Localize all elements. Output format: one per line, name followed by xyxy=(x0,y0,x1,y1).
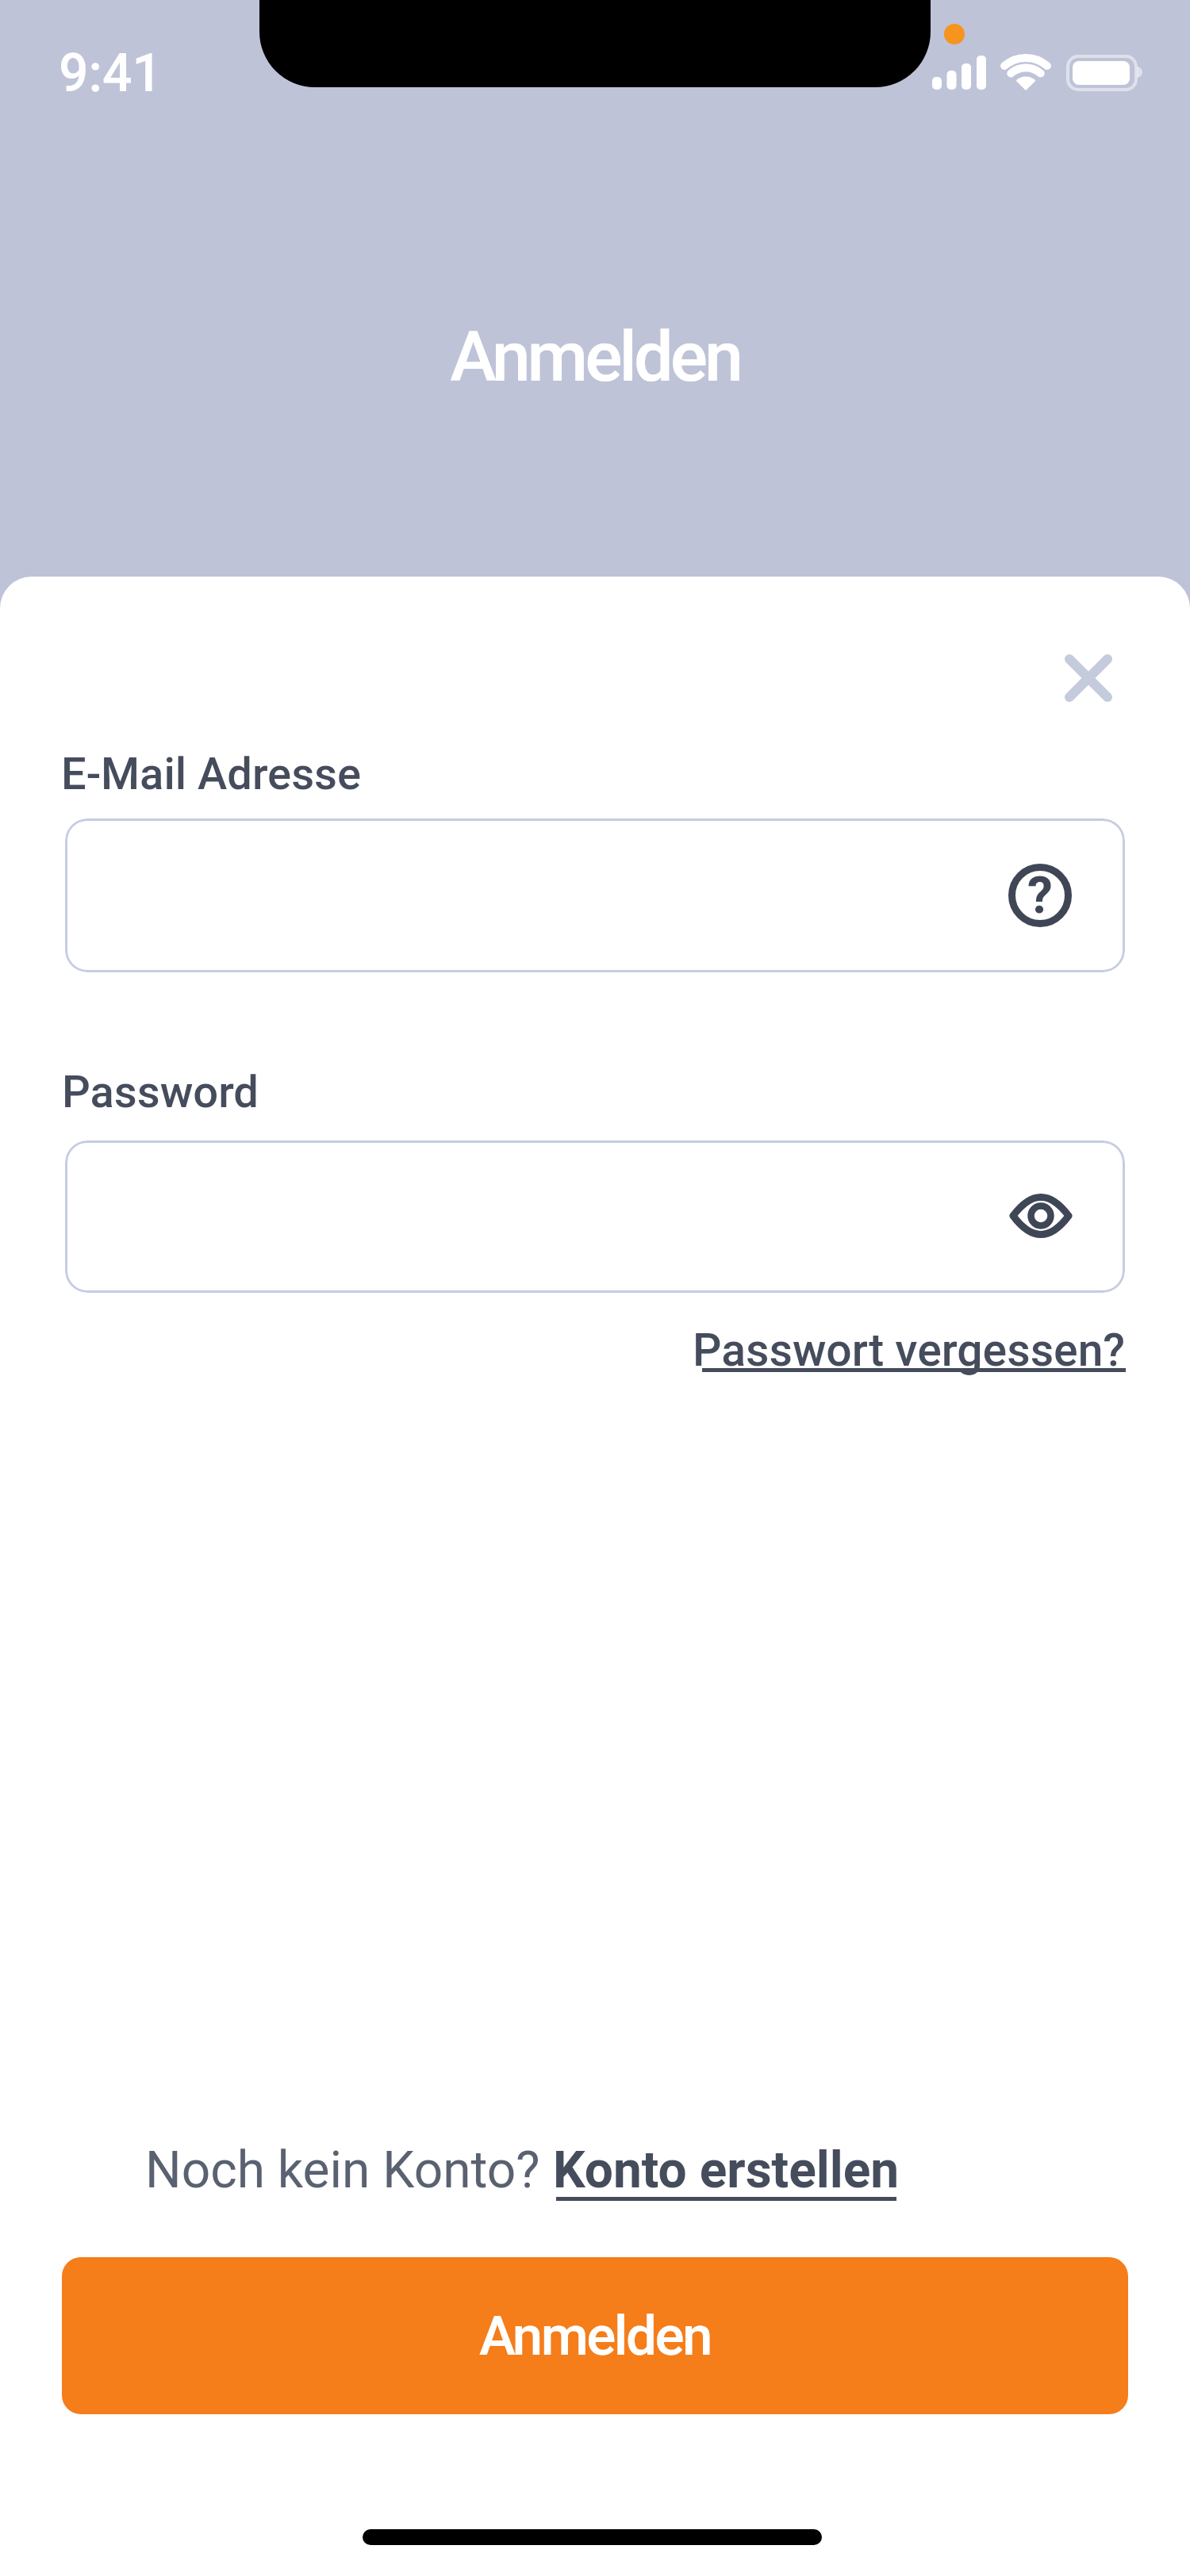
button[interactable] xyxy=(65,818,1125,972)
staticText: Noch kein Konto? xyxy=(145,2141,553,2200)
staticText: Anmelden xyxy=(0,316,1190,397)
staticText: Password xyxy=(62,1066,259,1118)
button[interactable]: Anmelden xyxy=(62,2257,1128,2414)
button[interactable] xyxy=(1049,638,1128,718)
button[interactable]: Passwort vergessen? xyxy=(757,1324,1190,1377)
staticText: Konto erstellen xyxy=(553,2141,900,2200)
staticText: Anmelden xyxy=(479,2304,711,2368)
staticText: ? xyxy=(1027,866,1053,926)
button[interactable] xyxy=(65,1140,1125,1293)
button[interactable]: Konto erstellen xyxy=(553,2141,900,2200)
button[interactable] xyxy=(1001,1176,1081,1255)
staticText: 9:41 xyxy=(59,43,163,104)
staticText: Passwort vergessen? xyxy=(693,1324,1126,1377)
button[interactable]: ? xyxy=(1008,864,1072,927)
staticText: E-Mail Adresse xyxy=(61,748,362,800)
